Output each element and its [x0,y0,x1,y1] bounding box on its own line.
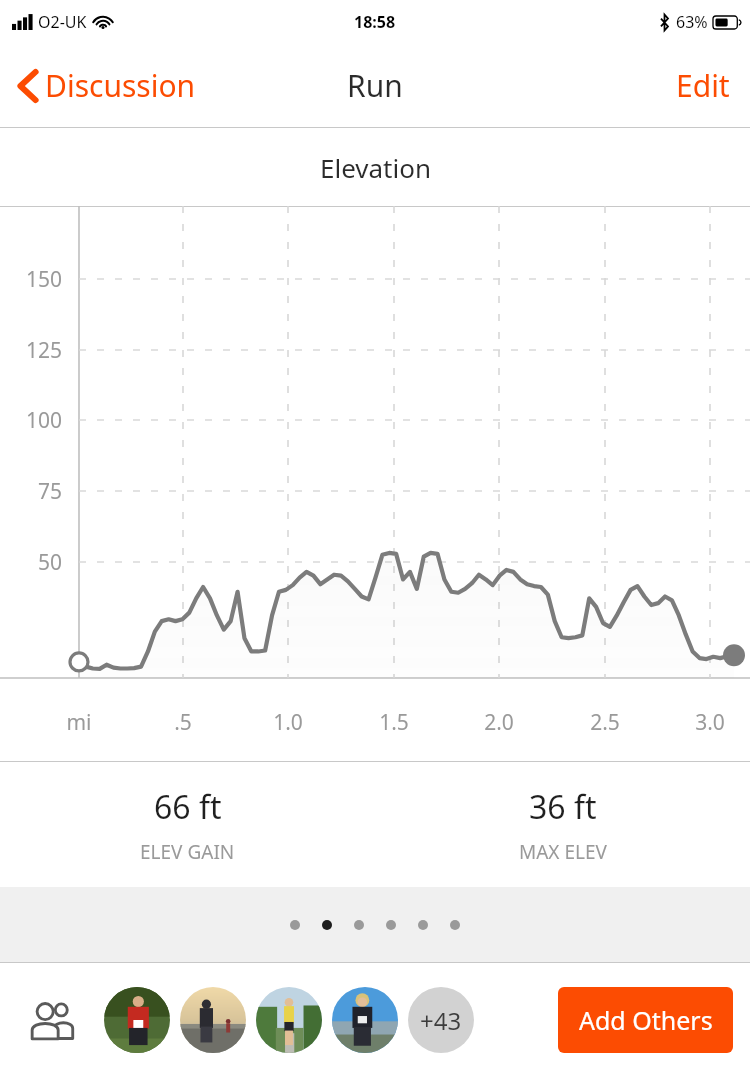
staticText: MAX ELEV [519,839,607,865]
staticText: O2-UK [38,11,87,33]
staticText: ELEV GAIN [140,839,235,865]
button[interactable]: 36 ft [375,785,750,865]
button[interactable]: Participant [332,987,398,1053]
staticText: 2.5 [565,708,645,737]
button[interactable]: Page 5 [418,920,428,930]
button[interactable]: Page 4 [386,920,396,930]
staticText: 50 [0,548,62,577]
button[interactable]: Participant [180,987,246,1053]
button[interactable]: Participants [22,993,86,1047]
staticText: Run [347,65,403,106]
staticText: 36 ft [529,785,597,829]
staticText: +43 [420,1004,462,1037]
button[interactable]: Page 2 [322,920,332,930]
button[interactable]: Page 6 [450,920,460,930]
staticText: Edit [676,65,730,106]
staticText: 2.0 [459,708,539,737]
staticText: Discussion [45,65,196,106]
button[interactable]: Edit [656,53,750,118]
staticText: Add Others [579,1003,713,1037]
staticText: 1.0 [248,708,328,737]
staticText: 3.0 [670,708,750,737]
staticText: Elevation [320,150,431,185]
staticText: 125 [0,336,62,365]
button[interactable]: Discussion [0,55,210,116]
staticText: 66 ft [154,785,222,829]
staticText: 1.5 [354,708,434,737]
staticText: 100 [0,406,62,435]
button[interactable]: Participant [104,987,170,1053]
staticText: 63% [676,11,708,33]
button[interactable]: 66 ft [0,785,375,865]
staticText: mi [39,708,119,737]
staticText: .5 [143,708,223,737]
button[interactable]: Page 3 [354,920,364,930]
staticText: 18:58 [354,11,396,33]
button[interactable]: Participant [256,987,322,1053]
staticText: 150 [0,265,62,294]
staticText: 75 [0,477,62,506]
button[interactable]: +43 [408,987,474,1053]
button[interactable]: Add Others [558,987,733,1053]
button[interactable]: Page 1 [290,920,300,930]
